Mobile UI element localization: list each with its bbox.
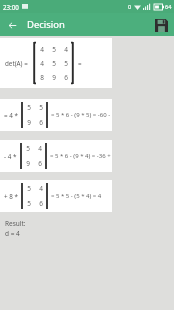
staticText: det(A) =	[5, 59, 28, 68]
staticText: 4	[40, 45, 44, 54]
staticText: = 5 * 5 - (5 * 4) = 4	[51, 192, 102, 200]
staticText: 5	[39, 103, 43, 112]
staticText: Result:	[5, 219, 26, 228]
staticText: 9	[27, 118, 31, 127]
button[interactable]: = 4 *	[0, 99, 112, 131]
staticText: 4	[64, 45, 68, 54]
staticText: - 4 *	[4, 152, 17, 161]
button[interactable]: Back	[4, 17, 20, 33]
staticText: + 8 *	[4, 192, 18, 201]
staticText: 9	[26, 159, 30, 168]
staticText: = 5 * 6 - (9 * 4) = -36 +	[50, 152, 111, 160]
staticText: 5	[26, 144, 30, 153]
staticText: 6	[39, 118, 43, 127]
staticText: Decision	[27, 18, 65, 31]
button[interactable]: Save	[151, 15, 171, 35]
button[interactable]: det(A) =	[0, 38, 112, 88]
staticText: 5	[27, 103, 31, 112]
staticText: 8	[40, 73, 44, 82]
staticText: 23:00	[3, 3, 19, 11]
staticText: 5	[52, 59, 56, 68]
button[interactable]: + 8 *	[0, 180, 112, 212]
staticText: 5	[27, 184, 31, 193]
staticText: 9	[52, 73, 56, 82]
staticText: 6	[38, 159, 42, 168]
staticText: 6	[39, 199, 43, 208]
staticText: = 5 * 6 - (9 * 5) = -60 -	[51, 111, 111, 119]
staticText: = 4 *	[4, 111, 18, 120]
button[interactable]: - 4 *	[0, 140, 112, 172]
staticText: 5	[52, 45, 56, 54]
staticText: d = 4	[5, 229, 20, 238]
staticText: 4	[38, 144, 42, 153]
staticText: 4	[40, 59, 44, 68]
staticText: 5	[64, 59, 68, 68]
staticText: 5	[27, 199, 31, 208]
staticText: 64	[165, 3, 172, 10]
staticText: 4	[39, 184, 43, 193]
staticText: 0	[128, 3, 132, 10]
staticText: =	[78, 59, 82, 68]
staticText: 6	[64, 73, 68, 82]
